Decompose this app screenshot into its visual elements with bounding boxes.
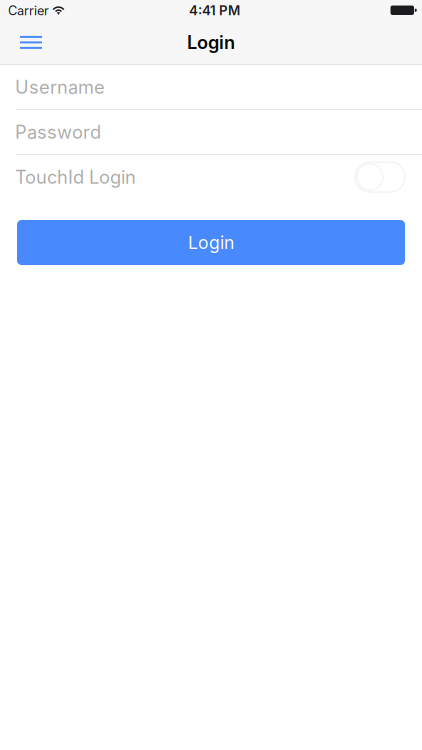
staticText: Login <box>187 31 235 53</box>
button[interactable]: Password <box>0 110 422 154</box>
staticText: TouchId Login <box>15 166 136 188</box>
staticText: Carrier <box>8 3 49 18</box>
staticText: Username <box>15 76 105 98</box>
button[interactable]: TouchId Login <box>355 162 405 192</box>
button[interactable]: Login <box>17 220 405 265</box>
button[interactable]: Username <box>0 65 422 109</box>
button[interactable]: Menu <box>0 21 64 64</box>
staticText: Password <box>15 121 101 143</box>
staticText: 4:41 PM <box>189 2 240 18</box>
staticText: Login <box>188 232 234 253</box>
